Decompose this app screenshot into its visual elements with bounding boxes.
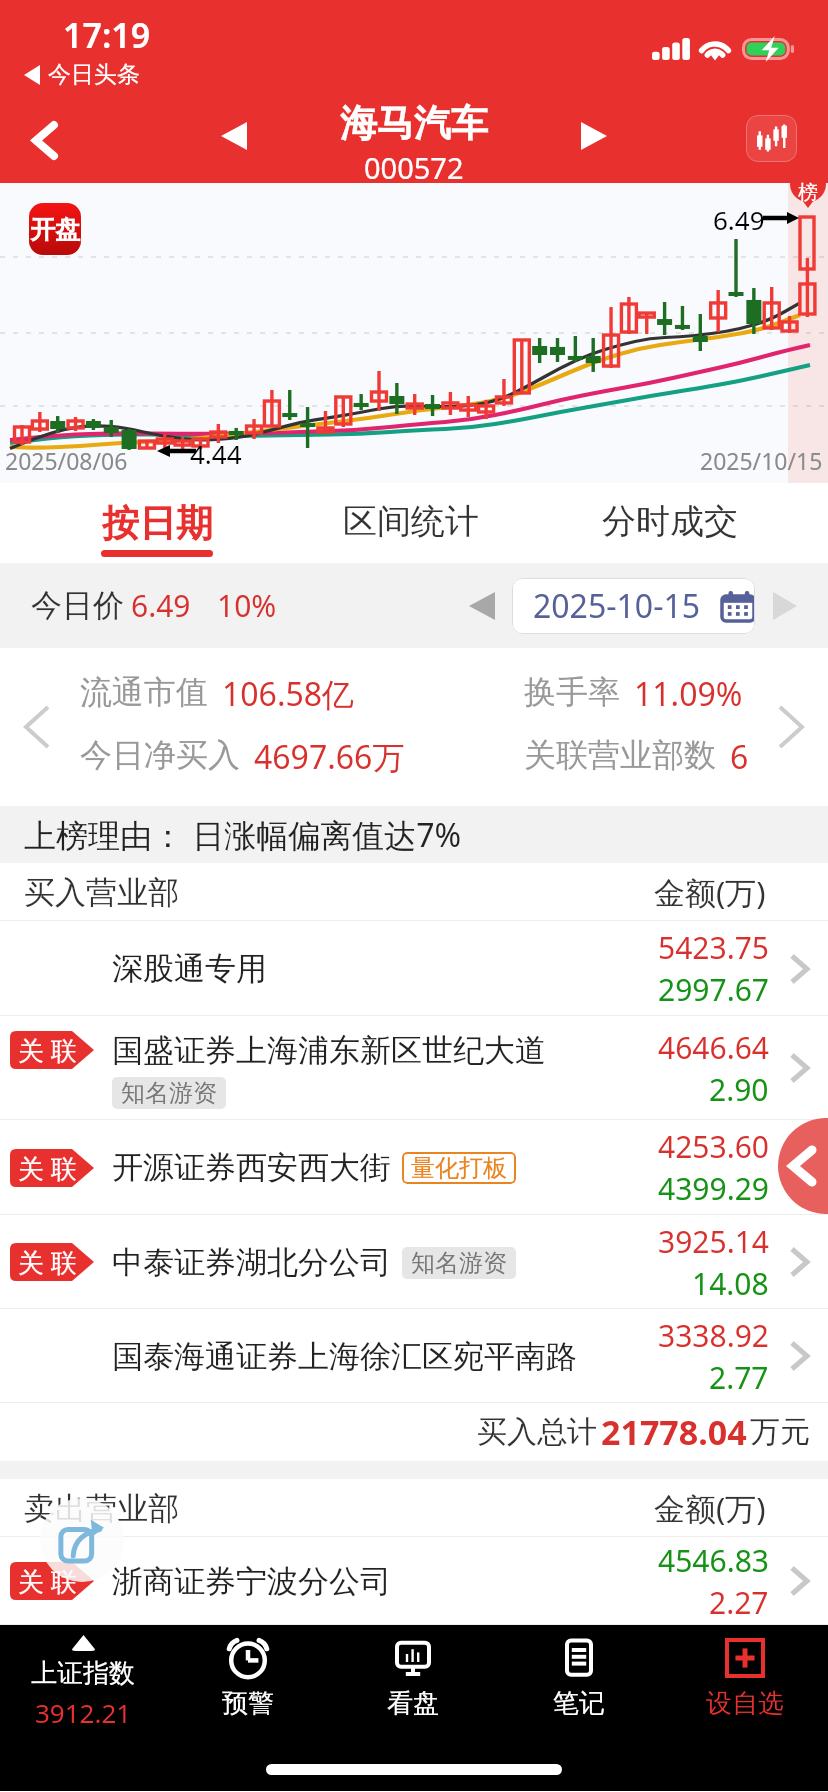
staticText: 榜 <box>798 180 818 205</box>
button[interactable]: 2025-10-15 <box>512 578 755 634</box>
button[interactable]: 区间统计 <box>318 483 504 563</box>
button[interactable]: 深股通专用 <box>0 921 828 1016</box>
staticText: 关联营业部数 <box>524 735 716 775</box>
staticText: 量化打板 <box>411 1153 507 1183</box>
staticText: 4697.66万 <box>254 735 405 779</box>
staticText: 4.44 <box>190 436 242 471</box>
staticText: 万元 <box>750 1413 810 1451</box>
staticText: 区间统计 <box>343 500 479 543</box>
staticText: 11.09% <box>634 672 743 716</box>
staticText: 4546.83 <box>658 1540 769 1581</box>
staticText: 买入营业部 <box>24 873 179 912</box>
button[interactable]: 看盘 <box>330 1625 496 1751</box>
staticText: 2025-10-15 <box>533 584 701 628</box>
button[interactable]: K-line chart <box>746 115 797 162</box>
button[interactable]: Collapse panel <box>778 1118 828 1214</box>
staticText: 14.08 <box>692 1263 769 1304</box>
button[interactable]: 关 联 <box>0 1120 828 1215</box>
button[interactable]: Market open <box>0 183 828 483</box>
button[interactable]: Share <box>40 1498 124 1582</box>
staticText: 海马汽车 <box>340 100 488 147</box>
staticText: 3925.14 <box>658 1221 769 1262</box>
staticText: 中泰证券湖北分公司 <box>112 1243 391 1282</box>
staticText: 分时成交 <box>602 500 738 543</box>
button[interactable]: Next stock <box>554 96 634 176</box>
staticText: 2997.67 <box>658 969 769 1010</box>
staticText: 17:19 <box>63 12 151 58</box>
button[interactable]: Previous stock <box>194 96 274 176</box>
staticText: 今日头条 <box>48 60 140 89</box>
staticText: 2.90 <box>709 1069 769 1110</box>
staticText: 2025/08/06 <box>5 445 128 476</box>
staticText: 6.49 <box>131 585 191 626</box>
button[interactable]: 预警 <box>165 1625 330 1751</box>
staticText: 关 联 <box>18 1563 77 1599</box>
staticText: 2025/10/15 <box>700 445 823 476</box>
staticText: 买入总计 <box>477 1413 597 1451</box>
button[interactable]: 上证指数 <box>0 1625 165 1751</box>
button[interactable]: 关 联 <box>0 1537 828 1625</box>
staticText: 2.77 <box>709 1357 769 1398</box>
staticText: 6.49 <box>713 202 765 237</box>
button[interactable]: 流通市值 <box>0 648 828 806</box>
staticText: 知名游资 <box>121 1078 217 1108</box>
staticText: 000572 <box>364 148 464 187</box>
staticText: 国泰海通证券上海徐汇区宛平南路 <box>112 1337 577 1376</box>
staticText: 知名游资 <box>411 1248 507 1278</box>
staticText: 深股通专用 <box>112 949 267 988</box>
staticText: 看盘 <box>387 1687 439 1720</box>
button[interactable]: 分时成交 <box>577 483 763 563</box>
staticText: 流通市值 <box>80 672 208 712</box>
staticText: 开源证券西安西大街 <box>112 1148 391 1187</box>
button[interactable]: 笔记 <box>496 1625 662 1751</box>
button[interactable]: 国泰海通证券上海徐汇区宛平南路 <box>0 1309 828 1403</box>
staticText: 今日净买入 <box>80 735 240 775</box>
staticText: 关 联 <box>18 1032 77 1068</box>
staticText: 浙商证券宁波分公司 <box>112 1562 391 1601</box>
button[interactable]: 关 联 <box>0 1215 828 1309</box>
button[interactable]: Next day <box>763 584 807 628</box>
staticText: 21778.04 <box>601 1409 747 1455</box>
staticText: 4253.60 <box>658 1126 769 1167</box>
staticText: 金额(万) <box>654 1487 766 1529</box>
button[interactable]: Previous day <box>460 584 504 628</box>
staticText: 3912.21 <box>35 1695 132 1730</box>
button[interactable]: 设自选 <box>662 1625 828 1751</box>
staticText: 关 联 <box>18 1150 77 1186</box>
staticText: 10% <box>217 585 277 626</box>
button[interactable]: 关 联 <box>0 1016 828 1120</box>
staticText: 2.27 <box>709 1582 769 1623</box>
staticText: 换手率 <box>524 672 620 712</box>
staticText: 106.58亿 <box>222 672 355 716</box>
staticText: 按日期 <box>102 500 213 547</box>
staticText: 设自选 <box>706 1687 784 1720</box>
staticText: 今日价 <box>31 586 124 625</box>
staticText: 卖出营业部 <box>24 1489 179 1528</box>
staticText: 金额(万) <box>654 871 766 913</box>
staticText: 上证指数 <box>31 1657 135 1690</box>
staticText: 关 联 <box>18 1244 77 1280</box>
staticText: 5423.75 <box>658 927 769 968</box>
staticText: 3338.92 <box>658 1315 769 1356</box>
button[interactable]: Market open <box>29 203 81 255</box>
staticText: 4646.64 <box>658 1027 769 1068</box>
staticText: 笔记 <box>553 1687 605 1720</box>
staticText: 预警 <box>222 1687 274 1720</box>
staticText: 开盘 <box>30 214 80 245</box>
staticText: 6 <box>730 735 749 779</box>
staticText: 上榜理由： 日涨幅偏离值达7% <box>24 813 462 857</box>
button[interactable]: Back <box>0 96 88 184</box>
staticText: 4399.29 <box>658 1168 769 1209</box>
button[interactable]: 按日期 <box>77 483 237 563</box>
staticText: 国盛证券上海浦东新区世纪大道 <box>112 1031 546 1070</box>
